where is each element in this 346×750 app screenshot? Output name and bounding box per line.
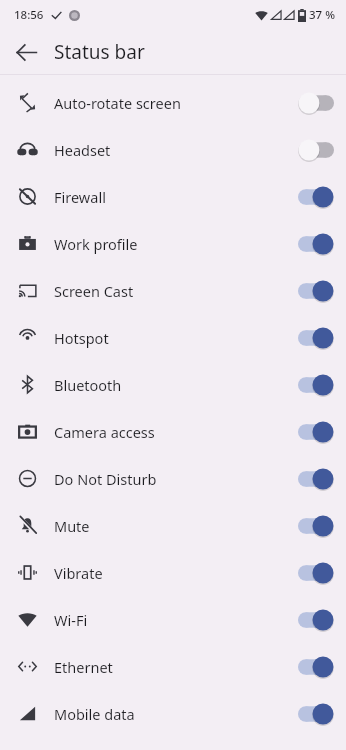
button[interactable]: Mute xyxy=(0,502,346,549)
staticText: Firewall xyxy=(54,187,298,207)
button[interactable]: Firewall xyxy=(0,173,346,220)
button[interactable]: Bluetooth xyxy=(0,361,346,408)
button[interactable]: Wi-Fi xyxy=(0,596,346,643)
staticText: 37 % xyxy=(309,7,335,23)
button[interactable]: Camera access xyxy=(0,408,346,455)
staticText: Hotspot xyxy=(54,328,298,348)
button[interactable]: Work profile xyxy=(0,220,346,267)
button[interactable]: Mobile data xyxy=(0,690,346,737)
staticText: Mobile data xyxy=(54,704,298,724)
staticText: Status bar xyxy=(54,39,145,65)
button[interactable]: Vibrate xyxy=(0,549,346,596)
staticText: Screen Cast xyxy=(54,281,298,301)
staticText: Camera access xyxy=(54,422,298,442)
button[interactable]: Back xyxy=(6,32,46,72)
staticText: Mute xyxy=(54,516,298,536)
staticText: Ethernet xyxy=(54,657,298,677)
staticText: Bluetooth xyxy=(54,375,298,395)
button[interactable]: Do Not Disturb xyxy=(0,455,346,502)
button[interactable]: Ethernet xyxy=(0,643,346,690)
button[interactable]: Auto-rotate screen xyxy=(0,79,346,126)
staticText: 18:56 xyxy=(14,7,44,23)
staticText: Work profile xyxy=(54,234,298,254)
staticText: Vibrate xyxy=(54,563,298,583)
staticText: Wi-Fi xyxy=(54,610,298,630)
button[interactable]: Hotspot xyxy=(0,314,346,361)
staticText: Headset xyxy=(54,140,298,160)
staticText: Do Not Disturb xyxy=(54,469,298,489)
staticText: Auto-rotate screen xyxy=(54,93,298,113)
button[interactable]: Headset xyxy=(0,126,346,173)
button[interactable]: Screen Cast xyxy=(0,267,346,314)
